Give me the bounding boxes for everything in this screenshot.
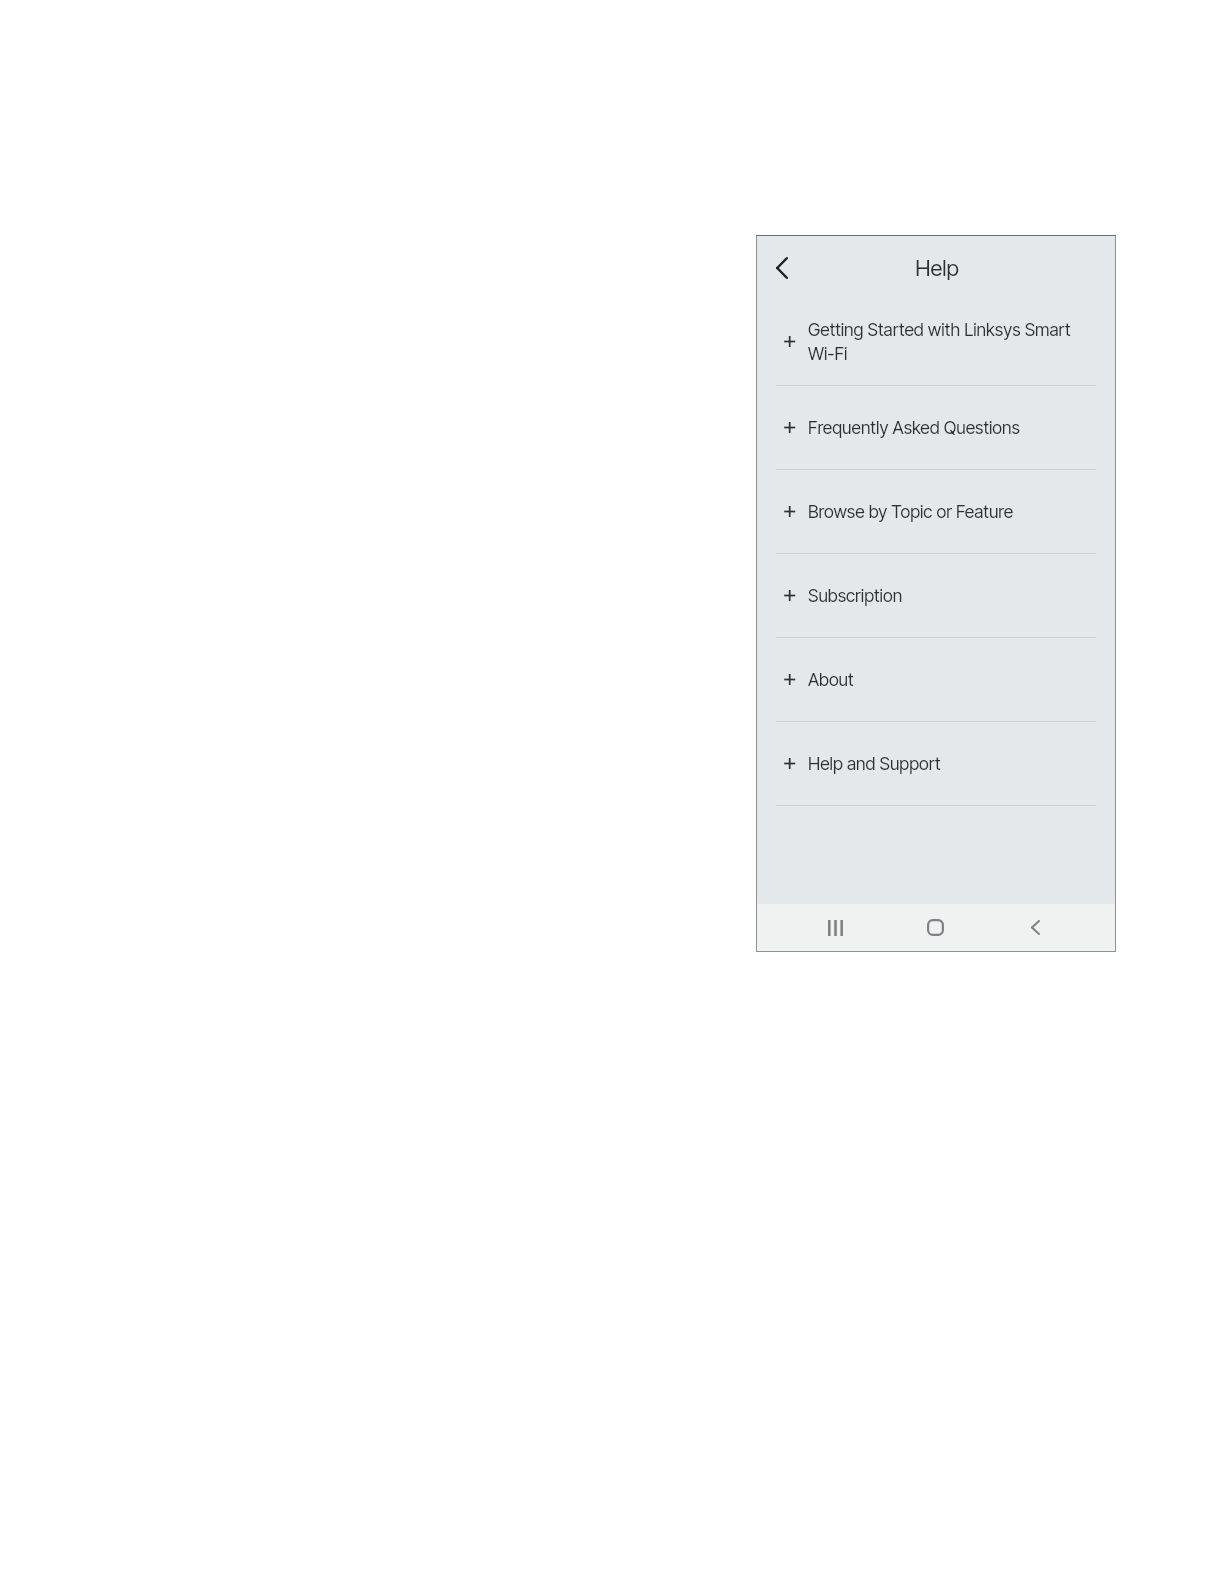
staticText: About [808,669,854,690]
staticText: Frequently Asked Questions [808,417,1020,438]
button[interactable]: Getting Started with Linksys Smart Wi-Fi [757,302,1115,386]
button[interactable]: Back [758,244,806,292]
button[interactable]: Recent apps [807,904,863,951]
button[interactable]: Home [907,904,963,951]
button[interactable]: Help and Support [757,722,1115,806]
staticText: Getting Started with Linksys Smart Wi-Fi [808,319,1078,364]
button[interactable]: Browse by Topic or Feature [757,470,1115,554]
button[interactable]: About [757,638,1115,722]
button[interactable]: Frequently Asked Questions [757,386,1115,470]
button[interactable]: Subscription [757,554,1115,638]
staticText: Browse by Topic or Feature [808,501,1014,522]
button[interactable]: Back [1007,904,1063,951]
staticText: Help and Support [808,753,941,774]
staticText: Help [915,255,959,282]
staticText: Subscription [808,585,903,606]
